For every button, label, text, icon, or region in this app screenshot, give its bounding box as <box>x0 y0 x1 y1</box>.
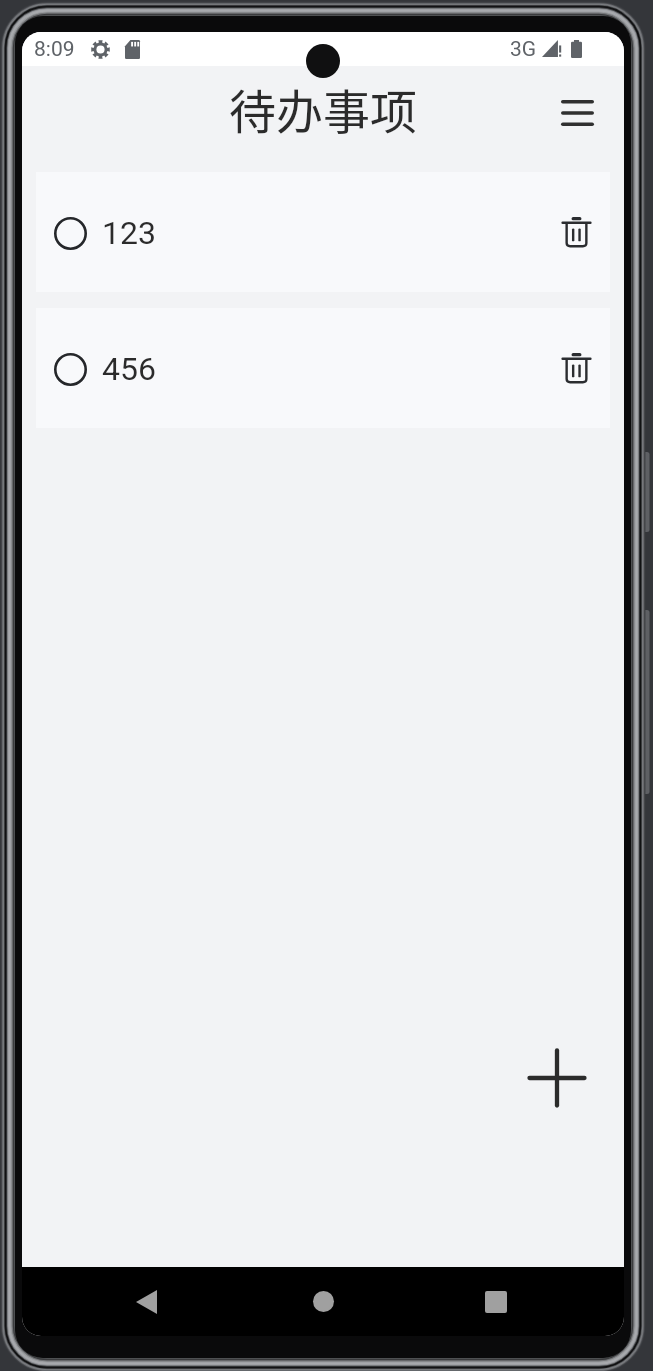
button[interactable]: Menu <box>547 83 607 143</box>
button[interactable]: Home <box>293 1267 353 1336</box>
button[interactable]: Recents <box>466 1267 526 1336</box>
button[interactable]: Delete <box>546 338 606 398</box>
staticText: 456 <box>102 350 156 388</box>
button[interactable]: Add task <box>506 1028 606 1128</box>
button[interactable]: Delete <box>546 202 606 262</box>
staticText: 3G <box>510 37 537 62</box>
button[interactable]: Back <box>116 1267 176 1336</box>
staticText: 8:09 <box>34 37 75 62</box>
staticText: 123 <box>102 214 156 252</box>
button[interactable]: 123 <box>36 172 610 292</box>
button[interactable]: 456 <box>36 308 610 428</box>
staticText: 待办事项 <box>229 74 417 142</box>
